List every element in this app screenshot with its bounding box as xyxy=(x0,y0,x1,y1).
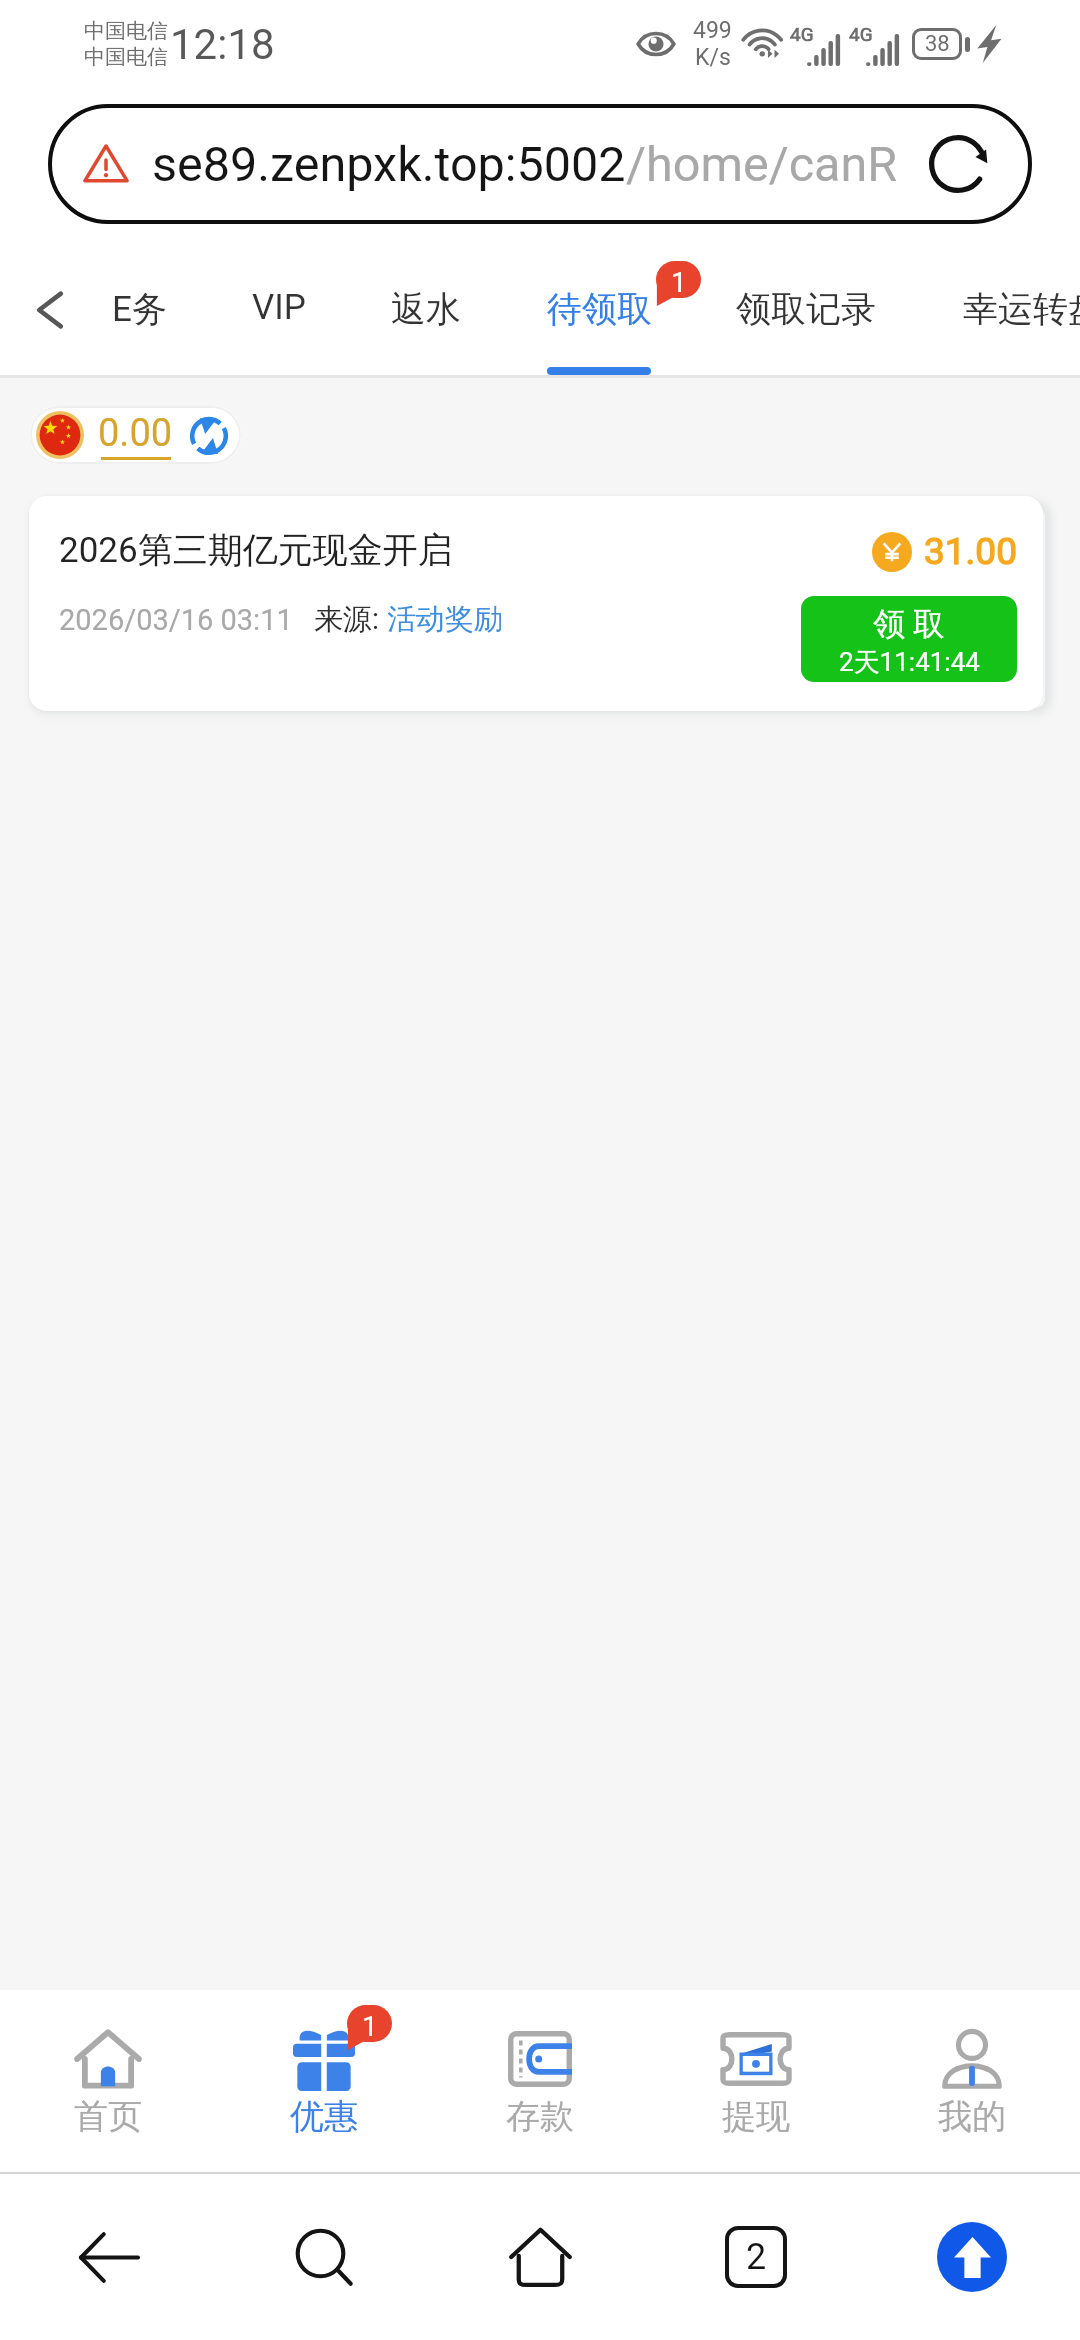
staticText: 待领取 xyxy=(547,287,652,331)
staticText: 优惠 xyxy=(290,2095,358,2138)
other: Home xyxy=(509,2227,572,2287)
staticText: 领 取 xyxy=(873,604,945,644)
button[interactable]: 返水 xyxy=(380,240,472,378)
button[interactable]: VIP xyxy=(235,240,323,378)
staticText: VIP xyxy=(252,287,306,328)
staticText: /home/canR xyxy=(626,136,898,193)
button[interactable]: Search xyxy=(216,2174,432,2340)
staticText: 中国电信 xyxy=(84,44,168,70)
button[interactable]: 存款 xyxy=(432,1990,648,2172)
button[interactable]: 2026第三期亿元现金开启 xyxy=(29,496,1043,711)
staticText: 1 xyxy=(671,266,687,299)
button[interactable]: 我的 xyxy=(864,1990,1080,2172)
button[interactable]: Home xyxy=(432,2174,648,2340)
other: Back xyxy=(78,2231,138,2284)
staticText: 2026/03/16 03:11 xyxy=(59,603,293,637)
button[interactable]: Back xyxy=(0,240,100,378)
staticText: 我的 xyxy=(938,2095,1006,2138)
button[interactable]: Scroll up xyxy=(864,2174,1080,2340)
staticText: 来源: xyxy=(314,601,387,638)
staticText: 活动奖励 xyxy=(387,601,503,638)
staticText: 0.00 xyxy=(98,411,173,456)
button[interactable]: Tabs xyxy=(648,2174,864,2340)
staticText: K/s xyxy=(695,44,731,71)
button[interactable]: 领取记录 xyxy=(726,240,886,378)
button[interactable]: Reload xyxy=(922,128,994,200)
staticText: 返水 xyxy=(391,287,461,331)
other: Tabs xyxy=(725,2226,787,2288)
staticText: 首页 xyxy=(74,2095,142,2138)
button[interactable]: Scroll up xyxy=(937,2222,1007,2292)
button[interactable]: 0.00 xyxy=(30,406,241,464)
button[interactable]: Back xyxy=(0,2174,216,2340)
button[interactable]: 提现 xyxy=(648,1990,864,2172)
button[interactable]: 待领取 xyxy=(536,240,662,378)
staticText: 幸运转盘 xyxy=(963,287,1080,331)
staticText: 31.00 xyxy=(924,530,1017,573)
staticText: 4G xyxy=(849,23,873,45)
button[interactable]: 幸运转盘 xyxy=(953,240,1080,378)
staticText: 2026第三期亿元现金开启 xyxy=(59,528,453,572)
other: Search xyxy=(296,2229,353,2286)
button[interactable]: 首页 xyxy=(0,1990,216,2172)
staticText: se89.zenpxk.top:5002 xyxy=(152,136,626,193)
staticText: E务 xyxy=(112,287,167,331)
button[interactable]: E务 xyxy=(99,240,179,378)
staticText: 提现 xyxy=(722,2095,790,2138)
staticText: 499 xyxy=(693,17,732,44)
staticText: 存款 xyxy=(506,2095,574,2138)
staticText: 2天11:41:44 xyxy=(839,646,980,679)
staticText: 2 xyxy=(746,2236,767,2278)
button[interactable]: se89.zenpxk.top:5002 xyxy=(48,104,1032,224)
staticText: 中国电信 xyxy=(84,18,168,44)
button[interactable]: 领 取 xyxy=(801,596,1017,682)
staticText: 12:18 xyxy=(170,20,275,69)
staticText: 领取记录 xyxy=(736,287,876,331)
staticText: 38 xyxy=(925,31,950,57)
button[interactable]: 1 xyxy=(216,1990,432,2172)
staticText: 1 xyxy=(362,2010,378,2043)
staticText: 4G xyxy=(790,23,814,45)
